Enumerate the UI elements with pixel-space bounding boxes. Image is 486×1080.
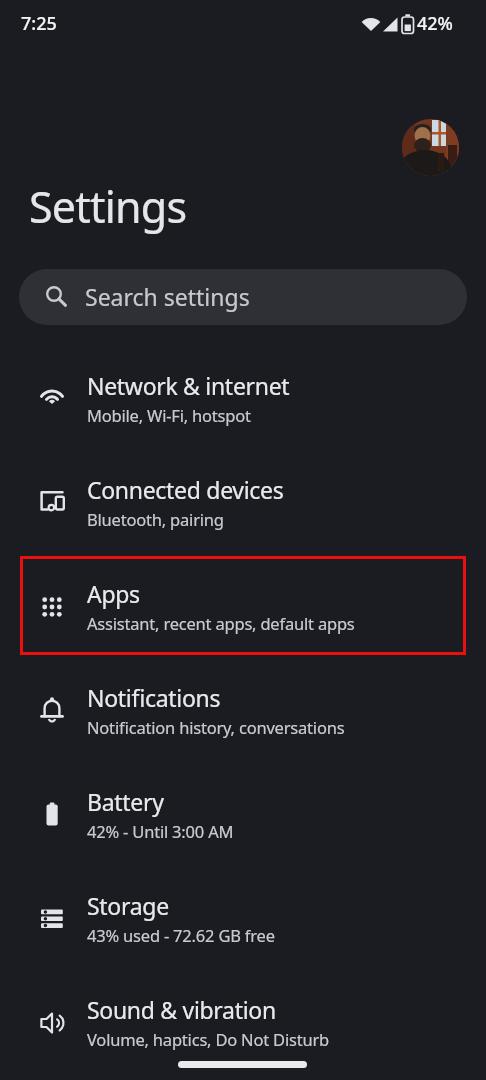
staticText: Notifications [87,682,221,713]
staticText: 42% [417,11,453,36]
staticText: Search settings [85,281,250,312]
staticText: Bluetooth, pairing [87,508,224,530]
staticText: Assistant, recent apps, default apps [87,612,355,634]
staticText: Volume, haptics, Do Not Disturb [87,1028,330,1050]
button[interactable]: Apps [0,555,486,659]
button[interactable]: Battery [0,763,486,867]
staticText: Storage [87,890,169,921]
button[interactable]: Notifications [0,659,486,763]
button[interactable]: Search settings [19,269,467,325]
staticText: 43% used - 72.62 GB free [87,924,275,946]
button[interactable]: Network & internet [0,347,486,451]
staticText: Network & internet [87,370,290,401]
staticText: Apps [87,578,140,609]
staticText: Settings [29,177,187,236]
staticText: Sound & vibration [87,994,276,1025]
staticText: Mobile, Wi-Fi, hotspot [87,404,251,426]
staticText: 7:25 [21,11,57,36]
staticText: Notification history, conversations [87,716,345,738]
staticText: 42% - Until 3:00 AM [87,820,234,842]
staticText: Battery [87,786,164,817]
button[interactable]: Sound & vibration [0,971,486,1075]
button[interactable]: Storage [0,867,486,971]
staticText: Connected devices [87,474,284,505]
button[interactable] [402,119,459,176]
button[interactable]: Connected devices [0,451,486,555]
